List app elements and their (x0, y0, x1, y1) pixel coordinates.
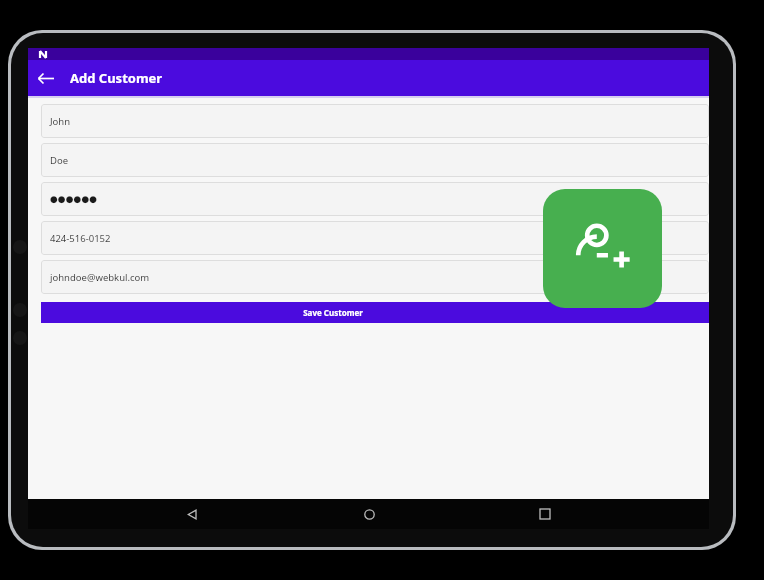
button[interactable]: Alerts (528, 501, 641, 529)
button[interactable]: Back (28, 61, 62, 95)
staticText: ●●●●●● (50, 194, 98, 204)
staticText: John (50, 115, 71, 128)
staticText: Add Customer (70, 69, 163, 87)
button[interactable]: johndoe@webkul.com (41, 260, 709, 294)
button[interactable]: ●●●●●● (41, 182, 709, 216)
staticText: Doe (50, 154, 69, 167)
button[interactable]: Save Customer (41, 302, 709, 323)
staticText: Save Customer (303, 307, 363, 318)
button[interactable]: Payments (302, 501, 415, 529)
button[interactable]: John (41, 104, 709, 138)
button[interactable]: Doe (41, 143, 709, 177)
button[interactable]: Recents (532, 501, 558, 527)
button[interactable]: 424-516-0152 (41, 221, 709, 255)
button[interactable]: Home (356, 501, 382, 527)
staticText: 424-516-0152 (50, 232, 111, 245)
button[interactable]: Orders (195, 507, 255, 523)
button[interactable]: Back (179, 501, 205, 527)
button[interactable]: Add customer (543, 189, 662, 308)
staticText: johndoe@webkul.com (50, 271, 150, 284)
